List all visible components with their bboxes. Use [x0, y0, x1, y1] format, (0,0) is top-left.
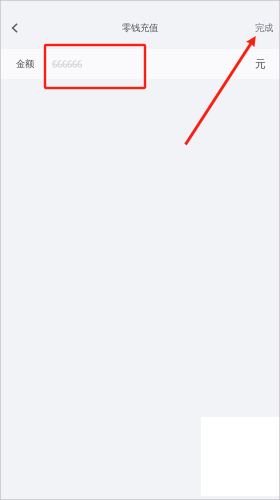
staticText: 666666	[52, 58, 82, 70]
staticText: 元	[255, 57, 266, 70]
button[interactable]: 666666	[34, 49, 255, 79]
staticText: 金额	[16, 58, 34, 70]
staticText: 零钱充值	[122, 22, 158, 34]
button[interactable]: 返回	[3, 16, 27, 40]
button[interactable]: 完成	[255, 16, 280, 40]
staticText: 完成	[255, 22, 273, 34]
